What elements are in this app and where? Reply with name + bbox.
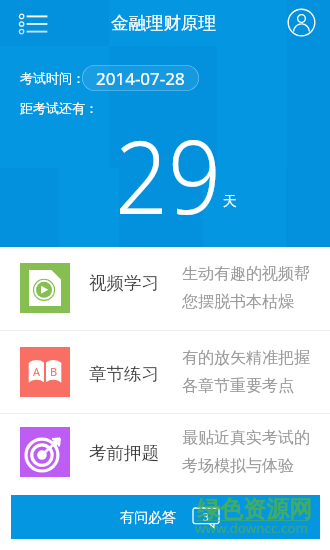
staticText: 考前押题 <box>89 442 159 464</box>
staticText: 最贴近真实考试的 <box>182 428 310 448</box>
staticText: 考场模拟与体验 <box>182 456 294 476</box>
button[interactable]: 视频学习 <box>0 247 330 330</box>
staticText: 您摆脱书本枯燥 <box>182 292 294 312</box>
button[interactable]: Menu <box>14 10 52 38</box>
button[interactable]: 有问必答 <box>11 495 320 539</box>
button[interactable]: Account <box>287 8 316 37</box>
staticText: 有的放矢精准把握 <box>182 348 310 368</box>
staticText: B <box>50 364 58 379</box>
button[interactable]: 考前押题 <box>0 414 330 497</box>
button[interactable]: A <box>0 331 330 414</box>
staticText: 视频学习 <box>89 272 159 294</box>
staticText: A <box>33 364 41 379</box>
staticText: 距考试还有： <box>20 100 98 116</box>
staticText: 金融理财原理 <box>111 12 216 34</box>
staticText: 2014-07-28 <box>96 67 185 90</box>
staticText: 各章节重要考点 <box>182 376 294 396</box>
staticText: 生动有趣的视频帮 <box>182 264 310 284</box>
staticText: 有问必答 <box>120 509 176 527</box>
staticText: 考试时间： <box>20 70 85 86</box>
staticText: 章节练习 <box>89 363 159 385</box>
staticText: 绿色资源网 <box>197 495 312 524</box>
staticText: 29 <box>115 105 221 244</box>
staticText: www.downcc.com <box>195 519 308 537</box>
staticText: 3 <box>203 510 209 524</box>
staticText: 天 <box>223 193 237 211</box>
